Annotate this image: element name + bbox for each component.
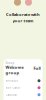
staticText: Collaborate with bbox=[6, 12, 40, 17]
staticText: Cara Diaz bbox=[5, 93, 16, 96]
staticText: Ben Carter bbox=[5, 86, 20, 89]
staticText: Welcome group bbox=[5, 65, 23, 75]
staticText: Full bbox=[33, 65, 40, 71]
staticText: Group bbox=[5, 61, 14, 65]
staticText: your team bbox=[12, 18, 33, 23]
staticText: Anna Lee bbox=[5, 79, 18, 82]
